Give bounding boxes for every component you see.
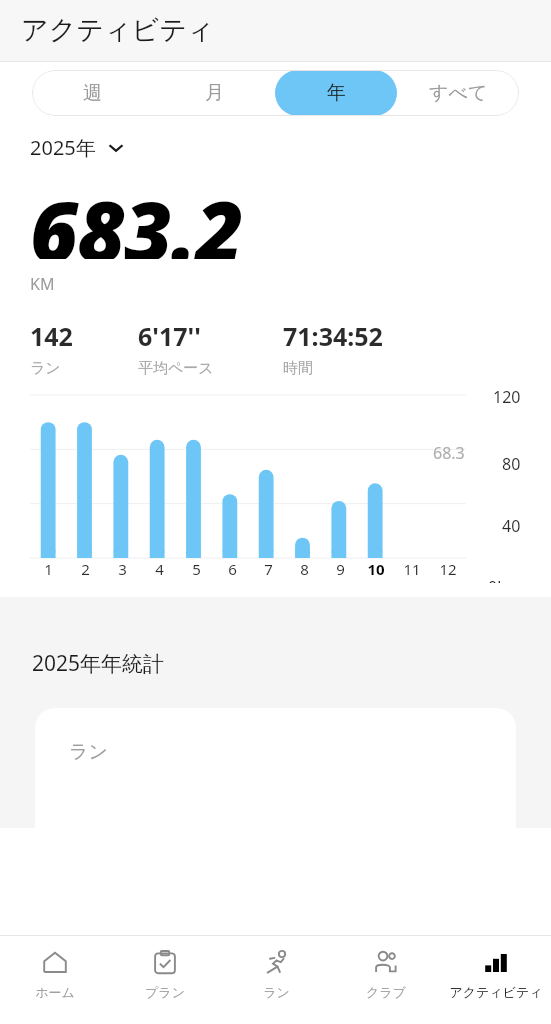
staticText: 2025年年統計 (32, 649, 165, 678)
staticText: 8 (300, 559, 309, 579)
staticText: 40 (502, 515, 521, 537)
button[interactable]: クラブ (331, 936, 441, 1024)
staticText: 平均ペース (138, 359, 214, 378)
staticText: KM (30, 273, 55, 295)
staticText: アクティビティ (449, 984, 543, 1000)
staticText: ラン (30, 359, 61, 378)
staticText: 0km (488, 576, 521, 583)
button[interactable]: ラン (221, 936, 331, 1024)
staticText: 3 (118, 559, 127, 579)
staticText: 2 (81, 559, 90, 579)
button[interactable]: 週 (32, 70, 153, 116)
staticText: アクティビティ (21, 13, 215, 47)
staticText: 120 (493, 386, 521, 408)
button[interactable]: 2025年 (30, 134, 126, 161)
staticText: 5 (192, 559, 201, 579)
staticText: 月 (205, 81, 224, 105)
button[interactable]: ラン (35, 708, 516, 828)
staticText: すべて (429, 81, 488, 105)
button[interactable]: すべて (397, 70, 519, 116)
staticText: 9 (336, 559, 345, 579)
staticText: 12 (439, 559, 457, 579)
staticText: 683.2 (30, 173, 243, 259)
staticText: 1 (44, 559, 53, 579)
staticText: ラン (69, 740, 108, 764)
button[interactable]: ホーム (0, 936, 110, 1024)
staticText: 80 (502, 453, 521, 475)
staticText: 週 (83, 81, 102, 105)
staticText: 11 (403, 559, 421, 579)
staticText: 4 (155, 559, 164, 579)
staticText: 2025年 (30, 134, 96, 161)
button[interactable]: アクティビティ (441, 936, 551, 1024)
staticText: 時間 (283, 359, 313, 378)
staticText: 142 (30, 319, 73, 353)
button[interactable]: 年 (275, 70, 397, 116)
staticText: 7 (264, 559, 273, 579)
staticText: 6'17'' (138, 319, 201, 353)
staticText: 71:34:52 (283, 319, 383, 353)
staticText: 68.3 (433, 442, 465, 464)
staticText: プラン (145, 984, 185, 1000)
staticText: 6 (228, 559, 237, 579)
staticText: クラブ (366, 984, 406, 1000)
staticText: ホーム (35, 984, 75, 1000)
button[interactable]: プラン (110, 936, 220, 1024)
button[interactable]: 月 (153, 70, 275, 116)
staticText: ラン (263, 984, 290, 1000)
staticText: 年 (327, 81, 346, 105)
staticText: 10 (367, 559, 385, 579)
